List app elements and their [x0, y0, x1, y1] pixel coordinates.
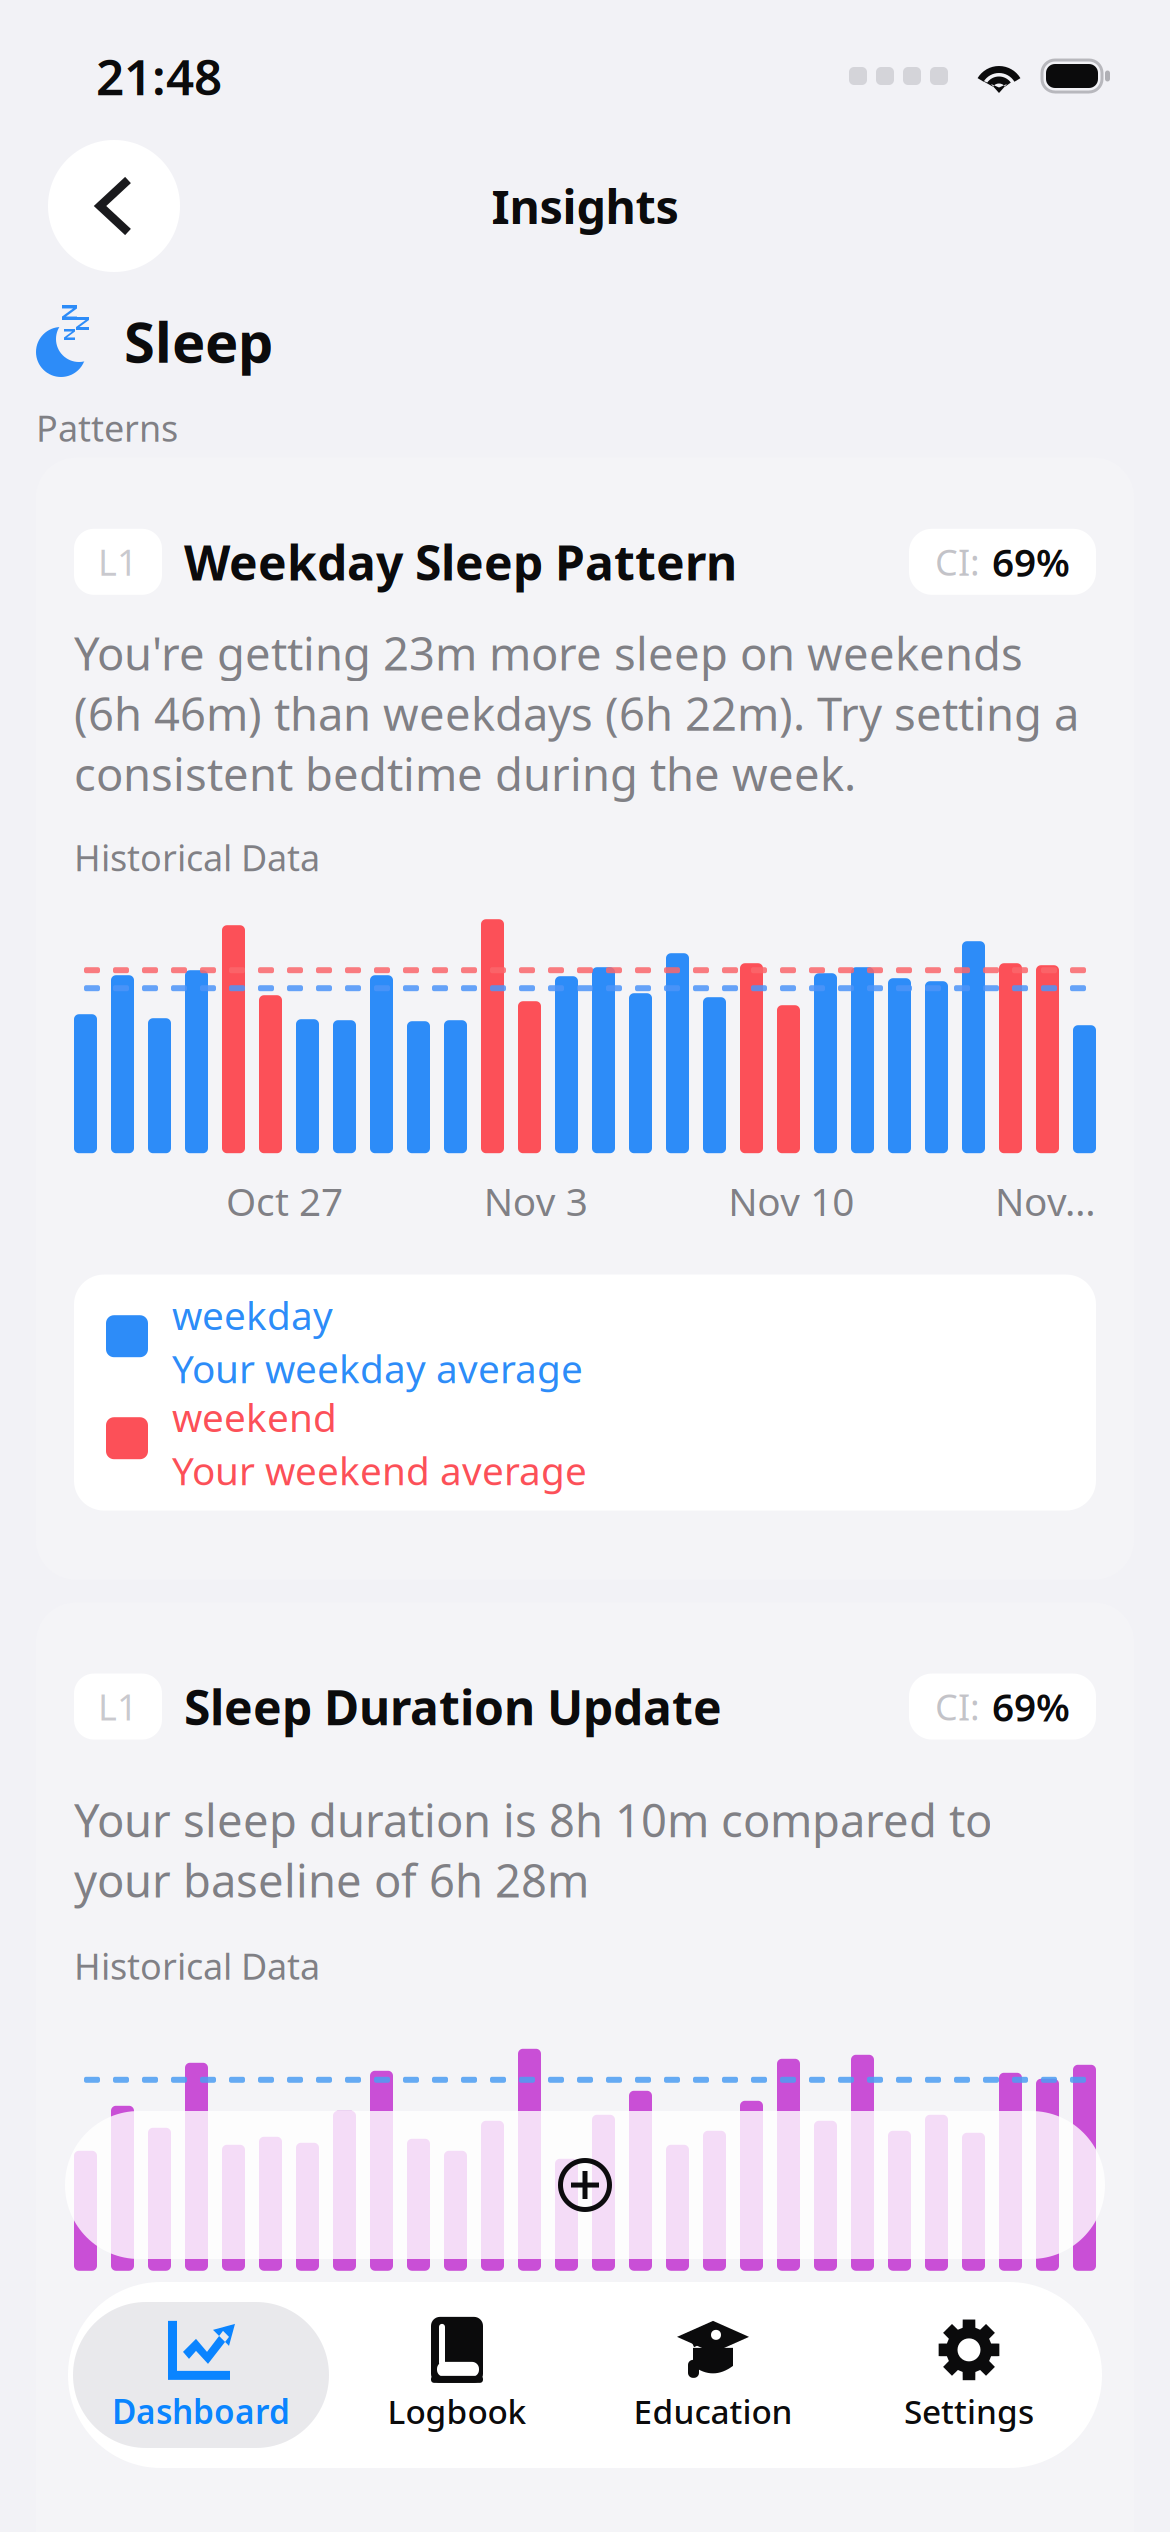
staticText: Dashboard — [112, 2389, 290, 2433]
staticText: weekday — [172, 1289, 333, 1340]
staticText: You're getting 23m more sleep on weekend… — [74, 623, 1079, 803]
staticText: Historical Data — [74, 833, 320, 881]
button[interactable]: Add entry — [65, 2111, 1105, 2259]
button[interactable]: Back — [48, 140, 180, 272]
staticText: CI: — [935, 1683, 980, 1730]
staticText: 69% — [992, 536, 1070, 587]
button[interactable]: Education — [585, 2302, 841, 2448]
staticText: Sleep — [124, 304, 273, 378]
staticText: L1 — [98, 1683, 138, 1730]
staticText: Nov 3 — [484, 1175, 588, 1226]
staticText: Nov… — [995, 1175, 1096, 1226]
staticText: Nov 10 — [728, 1175, 854, 1226]
staticText: Sleep Duration Update — [184, 1675, 722, 1738]
staticText: Your weekend average — [172, 1445, 587, 1496]
staticText: Your sleep duration is 8h 10m compared t… — [74, 1790, 992, 1910]
button[interactable]: Logbook — [329, 2302, 585, 2448]
staticText: Education — [633, 2389, 792, 2433]
staticText: Your weekday average — [172, 1343, 583, 1394]
button[interactable]: Dashboard — [73, 2302, 329, 2448]
staticText: Historical Data — [74, 1942, 320, 1990]
staticText: Patterns — [36, 404, 178, 452]
staticText: CI: — [935, 538, 980, 586]
staticText: Insights — [491, 175, 678, 237]
button[interactable]: Settings — [841, 2302, 1097, 2448]
staticText: Settings — [904, 2389, 1034, 2433]
staticText: Logbook — [387, 2389, 526, 2433]
staticText: 69% — [992, 1681, 1070, 1732]
staticText: Weekday Sleep Pattern — [184, 530, 737, 594]
staticText: 21:48 — [96, 43, 222, 109]
staticText: weekend — [172, 1391, 337, 1442]
staticText: Oct 27 — [226, 1175, 343, 1226]
staticText: L1 — [98, 538, 138, 586]
